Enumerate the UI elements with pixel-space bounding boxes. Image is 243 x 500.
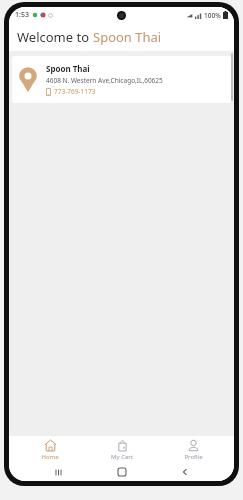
staticText: 1:53: [15, 10, 29, 20]
button[interactable]: 773-769-1173: [46, 87, 96, 96]
staticText: Profile: [184, 453, 203, 461]
staticText: 100%: [204, 11, 221, 20]
button[interactable]: Spoon Thai: [12, 56, 231, 103]
button[interactable]: Back: [171, 463, 199, 481]
button[interactable]: Profile: [163, 436, 223, 463]
other: My Cart: [116, 439, 129, 452]
staticText: Spoon Thai: [46, 63, 90, 74]
staticText: Home: [41, 453, 59, 461]
button[interactable]: Recents: [44, 463, 72, 481]
button[interactable]: Home: [108, 463, 136, 481]
staticText: My Cart: [111, 453, 133, 461]
staticText: Welcome to: [17, 28, 93, 46]
staticText: 4608 N. Western Ave,Chicago,IL,60625: [46, 76, 163, 85]
other: Home: [44, 439, 57, 452]
staticText: 773-769-1173: [54, 87, 96, 96]
button[interactable]: Home: [20, 436, 80, 463]
staticText: Spoon Thai: [93, 28, 162, 46]
other: Profile: [187, 439, 200, 452]
button[interactable]: My Cart: [92, 436, 152, 463]
